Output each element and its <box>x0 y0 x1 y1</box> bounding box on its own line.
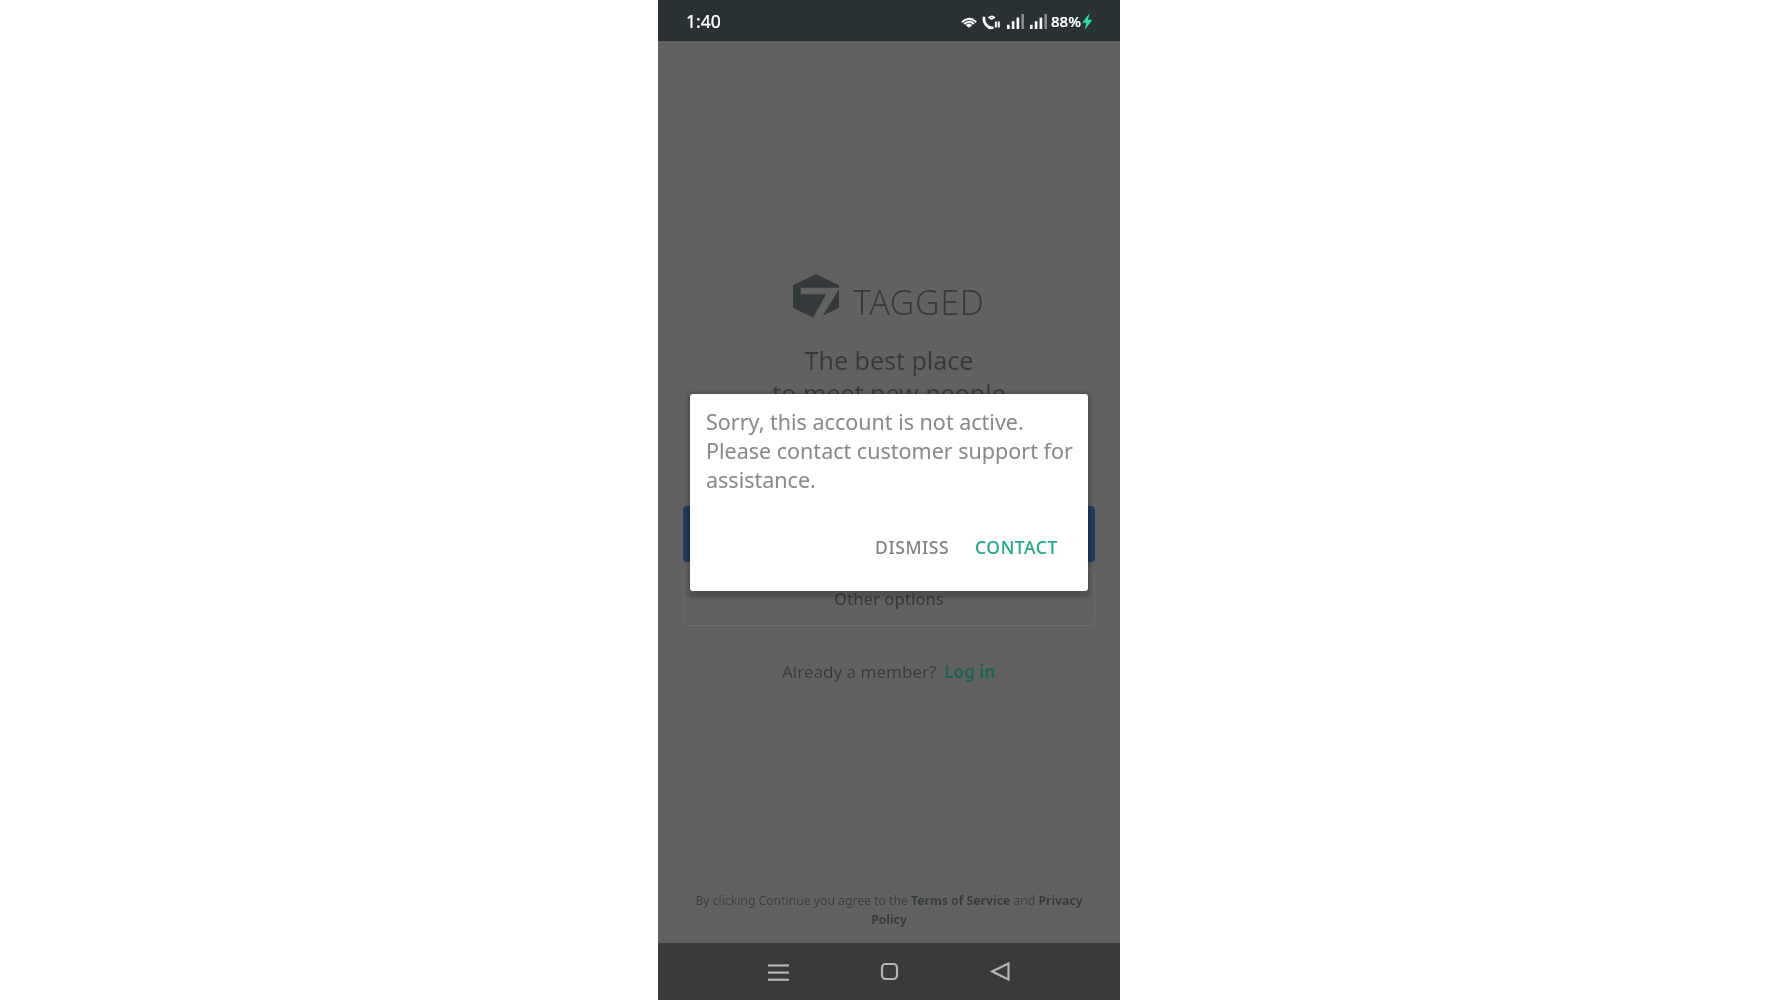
staticText: CONTACT <box>975 535 1058 559</box>
button[interactable]: Home <box>860 943 918 1000</box>
button[interactable]: DISMISS <box>867 529 958 565</box>
staticText: Already a member? <box>782 660 937 683</box>
staticText: 1:40 <box>686 9 721 33</box>
staticText: TAGGED <box>853 279 985 325</box>
staticText: Continue <box>853 523 925 545</box>
staticText: Other options <box>834 587 944 609</box>
staticText: Sorry, this account is not active. Pleas… <box>706 407 1073 494</box>
button[interactable]: Continue <box>683 506 1095 562</box>
button[interactable]: CONTACT <box>967 529 1066 565</box>
staticText: DISMISS <box>875 535 950 559</box>
staticText: 88% <box>1051 11 1081 31</box>
button[interactable]: Other options <box>683 570 1095 626</box>
button[interactable]: Back <box>971 943 1029 1000</box>
button[interactable]: Recent apps <box>749 943 807 1000</box>
staticText: Log in <box>944 660 996 683</box>
staticText: By clicking Continue you agree to the Te… <box>676 892 1102 927</box>
staticText: The best place to meet new people <box>772 343 1006 410</box>
button[interactable]: Log in <box>937 660 996 683</box>
